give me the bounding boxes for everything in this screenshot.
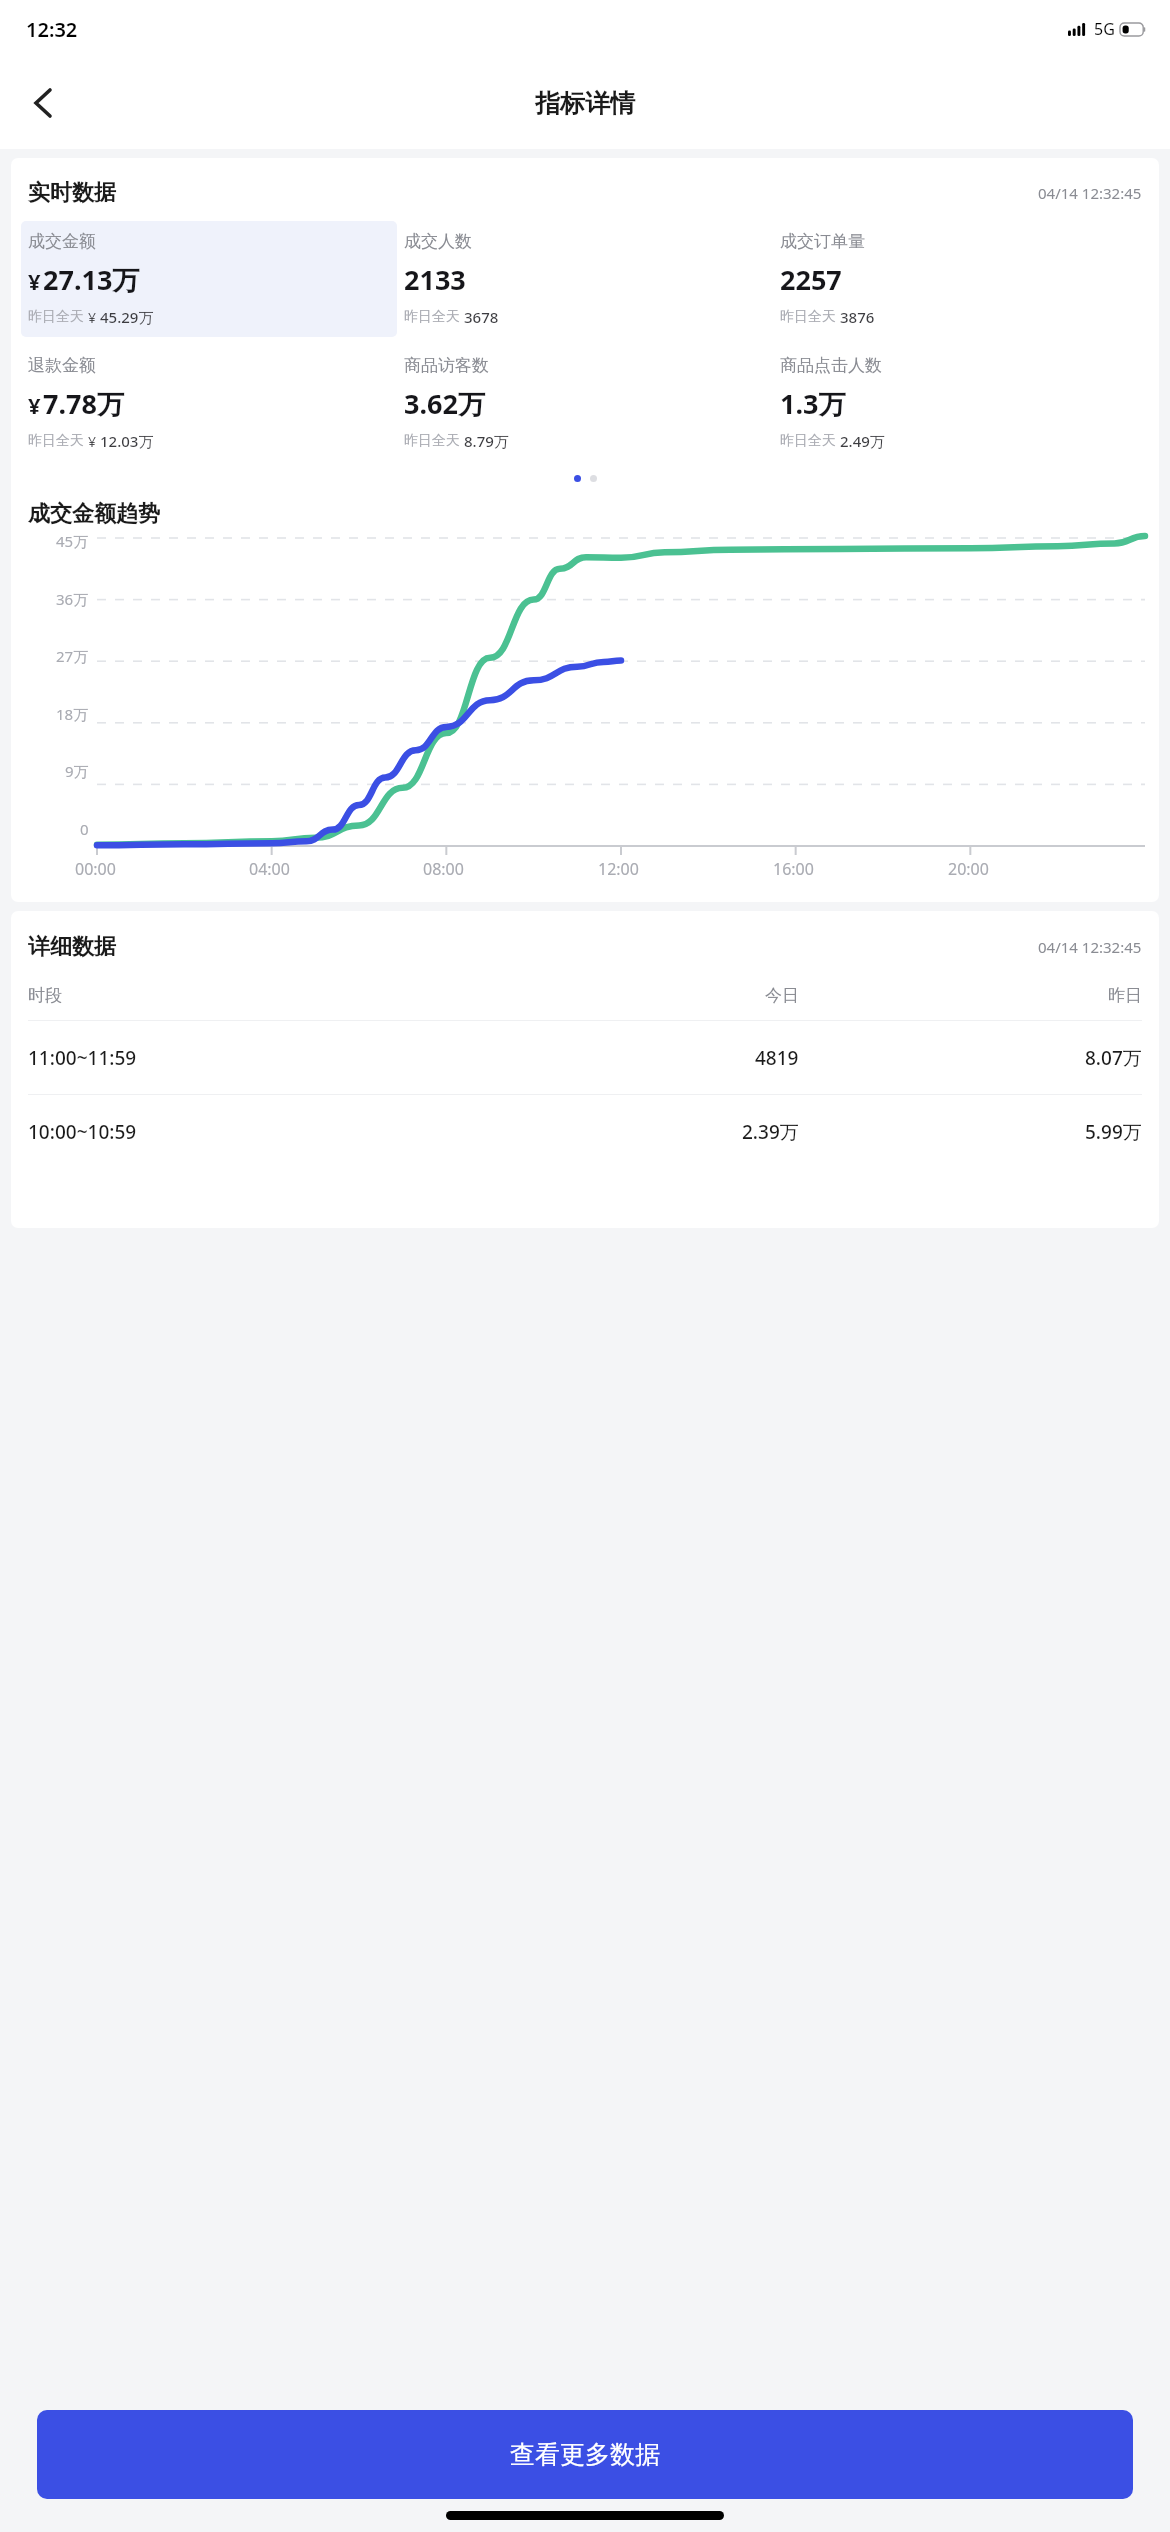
staticText: 27.13万 bbox=[43, 261, 140, 298]
button[interactable]: 10:00~10:59 bbox=[11, 1095, 1159, 1168]
staticText: 商品访客数 bbox=[404, 355, 489, 376]
staticText: 27万 bbox=[56, 646, 89, 666]
staticText: 45.29万 bbox=[100, 307, 154, 327]
staticText: 2133 bbox=[404, 261, 466, 298]
staticText: 成交金额 bbox=[28, 231, 96, 252]
staticText: 成交金额趋势 bbox=[28, 500, 160, 528]
staticText: 08:00 bbox=[423, 858, 464, 880]
staticText: 昨日全天 bbox=[28, 432, 84, 450]
button[interactable]: 查看更多数据 bbox=[37, 2410, 1133, 2499]
staticText: 商品点击人数 bbox=[780, 355, 882, 376]
staticText: 2.49万 bbox=[840, 431, 885, 451]
staticText: 16:00 bbox=[773, 858, 814, 880]
staticText: 退款金额 bbox=[28, 355, 96, 376]
staticText: 8.79万 bbox=[464, 431, 509, 451]
staticText: 10:00~10:59 bbox=[28, 1119, 137, 1145]
button[interactable]: Back bbox=[12, 72, 74, 134]
button[interactable]: 成交金额 bbox=[21, 221, 397, 337]
staticText: 11:00~11:59 bbox=[28, 1045, 137, 1071]
staticText: ¥ bbox=[88, 432, 97, 451]
staticText: ¥ bbox=[28, 390, 41, 420]
staticText: ¥ bbox=[28, 266, 41, 296]
staticText: 20:00 bbox=[948, 858, 989, 880]
staticText: 昨日全天 bbox=[404, 308, 460, 326]
button[interactable]: 成交订单量 bbox=[773, 221, 1149, 337]
staticText: 昨日 bbox=[1108, 985, 1142, 1006]
staticText: 时段 bbox=[28, 985, 62, 1006]
staticText: 9万 bbox=[65, 761, 89, 781]
staticText: 2257 bbox=[780, 261, 842, 298]
staticText: 36万 bbox=[56, 589, 89, 609]
staticText: 3678 bbox=[464, 307, 499, 327]
staticText: 详细数据 bbox=[28, 933, 116, 961]
staticText: 7.78万 bbox=[43, 385, 124, 422]
staticText: 昨日全天 bbox=[780, 432, 836, 450]
staticText: 45万 bbox=[56, 531, 89, 551]
button[interactable]: 商品访客数 bbox=[397, 353, 773, 453]
staticText: 04:00 bbox=[249, 858, 290, 880]
staticText: 2.39万 bbox=[742, 1119, 799, 1145]
staticText: 实时数据 bbox=[28, 179, 116, 207]
staticText: 昨日全天 bbox=[780, 308, 836, 326]
staticText: 18万 bbox=[56, 704, 89, 724]
button[interactable]: 成交人数 bbox=[397, 221, 773, 337]
staticText: 8.07万 bbox=[1085, 1045, 1142, 1071]
staticText: ¥ bbox=[88, 308, 97, 327]
button[interactable]: 11:00~11:59 bbox=[11, 1021, 1159, 1094]
staticText: 5.99万 bbox=[1085, 1119, 1142, 1145]
staticText: 成交人数 bbox=[404, 231, 472, 252]
staticText: 00:00 bbox=[75, 858, 116, 880]
staticText: 昨日全天 bbox=[28, 308, 84, 326]
staticText: 0 bbox=[80, 819, 89, 839]
staticText: 查看更多数据 bbox=[510, 2439, 660, 2470]
staticText: 12:32 bbox=[26, 16, 78, 43]
staticText: 3.62万 bbox=[404, 385, 485, 422]
staticText: 1.3万 bbox=[780, 385, 846, 422]
staticText: 04/14 12:32:45 bbox=[1038, 937, 1142, 957]
button[interactable]: 商品点击人数 bbox=[773, 353, 1149, 453]
staticText: 3876 bbox=[840, 307, 875, 327]
staticText: 成交订单量 bbox=[780, 231, 865, 252]
staticText: 昨日全天 bbox=[404, 432, 460, 450]
staticText: 12.03万 bbox=[100, 431, 154, 451]
staticText: 今日 bbox=[765, 985, 799, 1006]
staticText: 4819 bbox=[755, 1045, 799, 1071]
staticText: 指标详情 bbox=[535, 88, 635, 119]
staticText: 5G bbox=[1094, 18, 1115, 40]
button[interactable]: 退款金额 bbox=[21, 353, 397, 453]
staticText: 04/14 12:32:45 bbox=[1038, 183, 1142, 203]
staticText: 12:00 bbox=[598, 858, 639, 880]
